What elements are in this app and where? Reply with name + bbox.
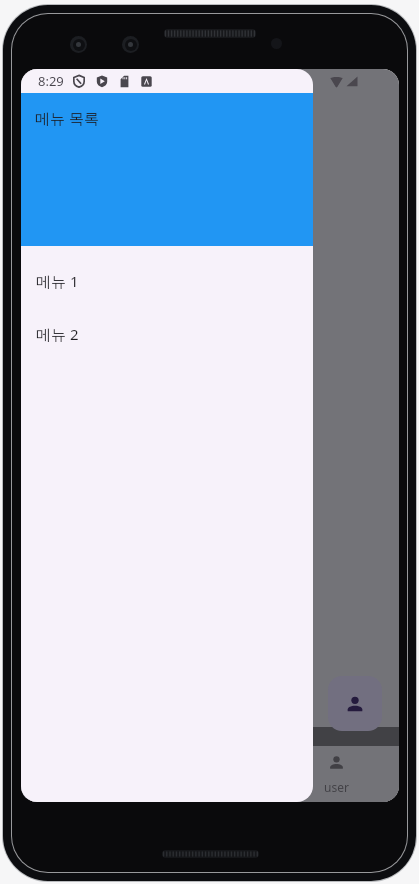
button[interactable]: Account: [328, 676, 382, 731]
button[interactable]: 메뉴 2: [21, 307, 313, 360]
staticText: 메뉴 1: [36, 271, 79, 291]
staticText: 메뉴 목록: [35, 108, 99, 128]
button[interactable]: user: [289, 746, 383, 802]
staticText: 8:29: [38, 72, 64, 90]
staticText: 메뉴 2: [36, 324, 79, 344]
staticText: user: [324, 779, 349, 795]
button[interactable]: 메뉴 1: [21, 254, 313, 307]
